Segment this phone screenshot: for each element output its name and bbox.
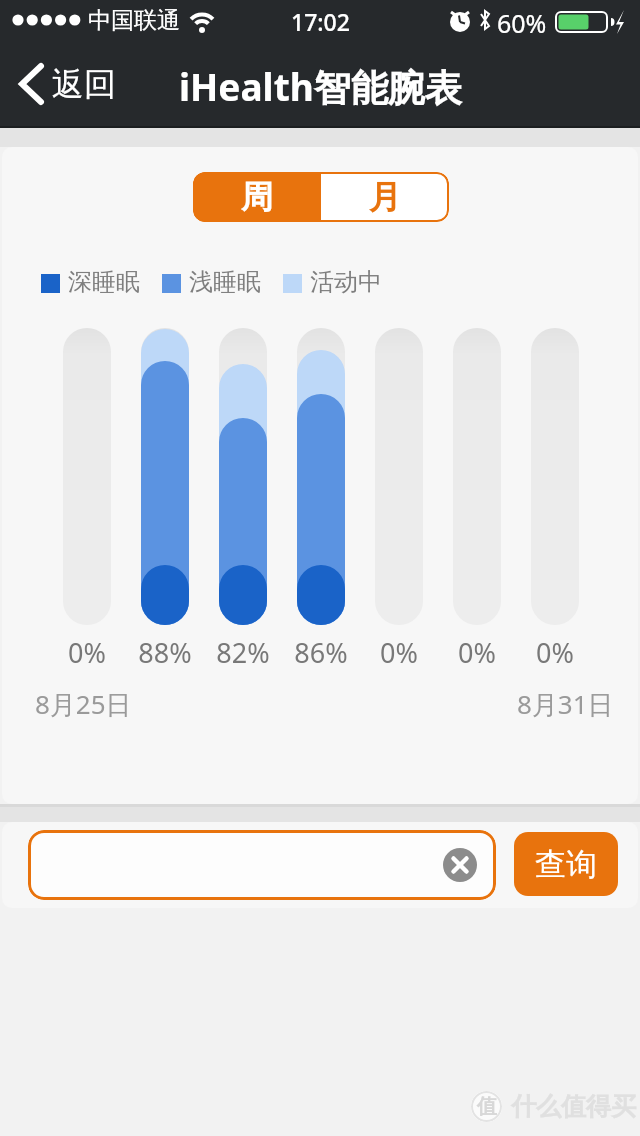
staticText: 月	[369, 177, 401, 217]
button[interactable]: 返回	[18, 40, 116, 128]
staticText: 82%	[203, 634, 283, 671]
button[interactable]: 月	[321, 172, 449, 222]
staticText: iHealth智能腕表	[179, 61, 462, 112]
button[interactable]: 周	[193, 172, 321, 222]
staticText: 返回	[52, 64, 116, 104]
staticText: 0%	[437, 634, 517, 671]
staticText: 什么值得买	[511, 1091, 636, 1122]
staticText: 88%	[125, 634, 205, 671]
button[interactable]	[443, 848, 477, 882]
button[interactable]: 查询	[514, 832, 618, 896]
button[interactable]	[28, 830, 496, 900]
staticText: 86%	[281, 634, 361, 671]
staticText: 8月25日	[35, 686, 132, 722]
staticText: 浅睡眠	[189, 267, 261, 297]
staticText: 中国联通	[88, 6, 180, 35]
staticText: 深睡眠	[68, 267, 140, 297]
staticText: 0%	[47, 634, 127, 671]
staticText: 0%	[515, 634, 595, 671]
staticText: 17:02	[291, 6, 350, 37]
staticText: 0%	[359, 634, 439, 671]
staticText: 活动中	[310, 267, 382, 297]
staticText: 值	[477, 1094, 497, 1119]
staticText: 60%	[497, 6, 547, 40]
staticText: 周	[241, 177, 273, 217]
staticText: 查询	[535, 845, 597, 884]
staticText: 8月31日	[517, 686, 614, 722]
